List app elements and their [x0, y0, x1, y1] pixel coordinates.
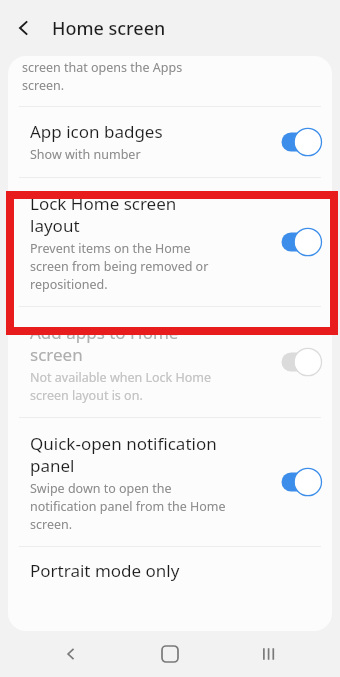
- button[interactable]: Recent apps: [241, 631, 297, 677]
- button[interactable]: Portrait mode only: [8, 547, 332, 582]
- button[interactable]: Lock Home screen layout: [8, 178, 332, 306]
- staticText: Quick-open notification panel: [30, 432, 217, 477]
- staticText: Show with number: [30, 146, 141, 163]
- staticText: screen that opens the Apps screen.: [22, 59, 183, 93]
- button[interactable]: Home: [142, 631, 198, 677]
- staticText: Portrait mode only: [30, 559, 180, 582]
- button[interactable]: Add apps to Home screen: [8, 307, 332, 417]
- button[interactable]: Back: [0, 4, 48, 52]
- staticText: Home screen: [52, 16, 166, 41]
- staticText: Add apps to Home screen: [30, 321, 179, 366]
- staticText: App icon badges: [30, 120, 163, 143]
- button[interactable]: screen that opens the Apps screen.: [8, 56, 332, 93]
- staticText: Prevent items on the Home screen from be…: [30, 240, 209, 292]
- button[interactable]: Quick-open notification panel: [8, 418, 332, 546]
- staticText: Swipe down to open the notification pane…: [30, 480, 226, 532]
- staticText: Lock Home screen layout: [30, 192, 177, 237]
- button[interactable]: App icon badges: [8, 107, 332, 177]
- button[interactable]: Back: [43, 631, 99, 677]
- staticText: Not available when Lock Home screen layo…: [30, 369, 212, 403]
